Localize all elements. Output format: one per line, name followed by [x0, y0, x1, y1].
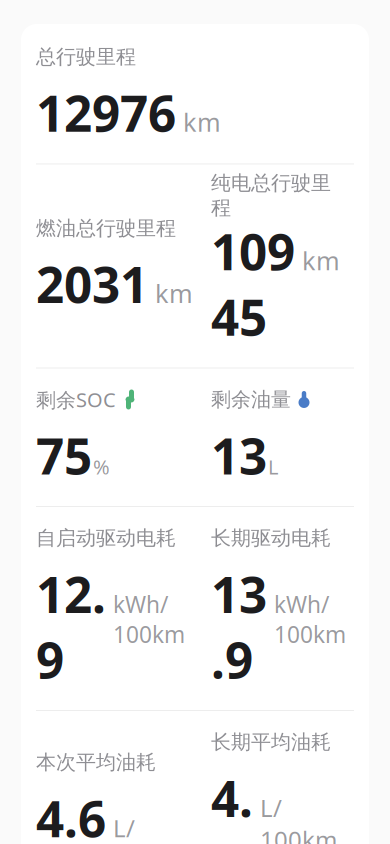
staticText: 燃油总行驶里程: [36, 216, 176, 240]
staticText: 纯电总行驶里程: [211, 171, 331, 220]
staticText: 75: [36, 422, 92, 488]
staticText: 10945: [211, 218, 295, 349]
staticText: 长期平均油耗: [211, 730, 331, 754]
staticText: km: [155, 276, 193, 310]
staticText: 本次平均油耗: [36, 750, 156, 775]
staticText: kWh/100km: [113, 589, 185, 649]
staticText: 长期驱动电耗: [211, 526, 331, 550]
staticText: 2031: [36, 251, 148, 317]
staticText: 4.6: [36, 785, 106, 844]
staticText: 12.9: [36, 561, 106, 692]
staticText: L/100km: [260, 792, 337, 844]
staticText: 13.9: [211, 561, 267, 692]
staticText: L: [268, 453, 278, 480]
staticText: 总行驶里程: [36, 45, 136, 69]
staticText: %: [93, 453, 110, 480]
staticText: km: [183, 105, 221, 139]
staticText: 剩余油量: [211, 387, 291, 412]
staticText: 13: [211, 422, 267, 488]
staticText: 剩余SOC: [36, 386, 116, 413]
staticText: L/100km: [113, 812, 190, 844]
staticText: kWh/100km: [274, 589, 346, 649]
staticText: km: [302, 244, 340, 277]
staticText: 自启动驱动电耗: [36, 526, 176, 550]
staticText: 4.4: [211, 765, 253, 844]
staticText: 12976: [36, 80, 176, 145]
